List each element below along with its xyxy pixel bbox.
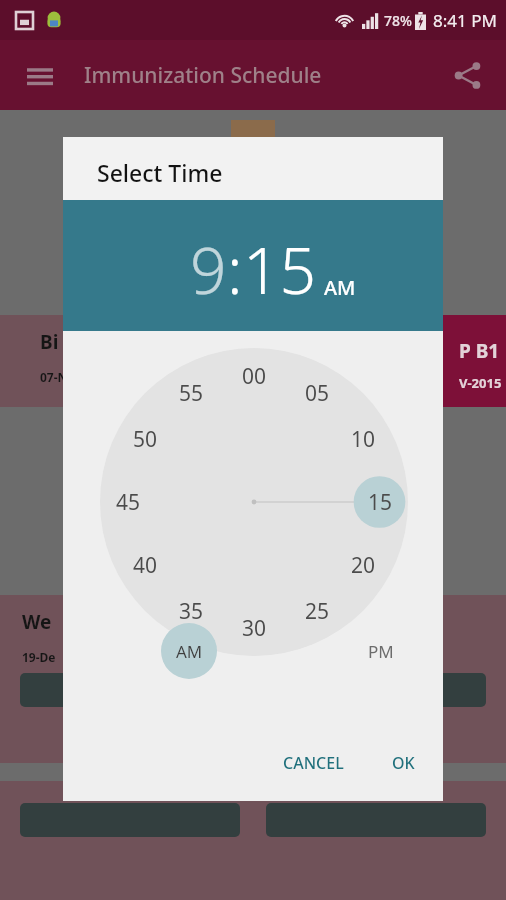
button[interactable]: 40 — [120, 540, 170, 590]
staticText: 40 — [133, 551, 158, 580]
button[interactable] — [20, 673, 240, 707]
staticText: AM — [176, 640, 203, 663]
button[interactable]: AM — [324, 274, 356, 301]
button[interactable]: 50 — [120, 414, 170, 464]
staticText: 30 — [242, 614, 267, 643]
staticText: 15 — [368, 488, 393, 517]
staticText: 35 — [179, 597, 204, 626]
button[interactable]: 55 — [166, 368, 216, 418]
button[interactable]: CANCEL — [271, 743, 356, 783]
staticText: 8:41 PM — [433, 9, 497, 32]
button[interactable]: 00 — [229, 351, 279, 401]
staticText: 45 — [116, 488, 141, 517]
staticText: P B1 — [459, 338, 500, 364]
staticText: We — [22, 609, 52, 635]
staticText: 10 — [351, 425, 376, 454]
button[interactable]: OK — [380, 743, 427, 783]
button[interactable]: 35 — [166, 586, 216, 636]
button[interactable]: AM — [161, 623, 217, 679]
staticText: Bi — [40, 329, 59, 355]
staticText: Immunization Schedule — [84, 61, 322, 90]
staticText: 50 — [133, 425, 158, 454]
staticText: 9 — [190, 226, 227, 313]
button[interactable]: 05 — [292, 368, 342, 418]
button[interactable]: 25 — [292, 586, 342, 636]
button[interactable]: 15 — [355, 477, 405, 527]
staticText: AM — [324, 274, 356, 301]
staticText: 25 — [305, 597, 330, 626]
staticText: : — [227, 226, 243, 313]
button[interactable]: Open navigation drawer — [14, 49, 66, 101]
staticText: 78% — [384, 11, 412, 30]
staticText: CANCEL — [283, 752, 344, 774]
staticText: 19-De — [22, 649, 56, 665]
staticText: 05 — [305, 379, 330, 408]
button[interactable]: 9 — [190, 226, 227, 313]
button[interactable]: 20 — [338, 540, 388, 590]
staticText: 55 — [179, 379, 204, 408]
staticText: 07-No — [40, 369, 75, 385]
staticText: 20 — [351, 551, 376, 580]
button[interactable]: Share — [441, 49, 493, 101]
button[interactable]: 30 — [229, 603, 279, 653]
staticText: 00 — [242, 362, 267, 391]
staticText: Select Time — [97, 157, 223, 188]
staticText: 15 — [243, 226, 317, 313]
button[interactable] — [266, 673, 486, 707]
button[interactable]: 15 — [243, 226, 317, 313]
staticText: OK — [392, 752, 415, 774]
staticText: V-2015 — [459, 374, 502, 392]
button[interactable]: 45 — [103, 477, 153, 527]
button[interactable]: PM — [353, 623, 409, 679]
button[interactable]: 10 — [338, 414, 388, 464]
staticText: PM — [368, 640, 394, 663]
